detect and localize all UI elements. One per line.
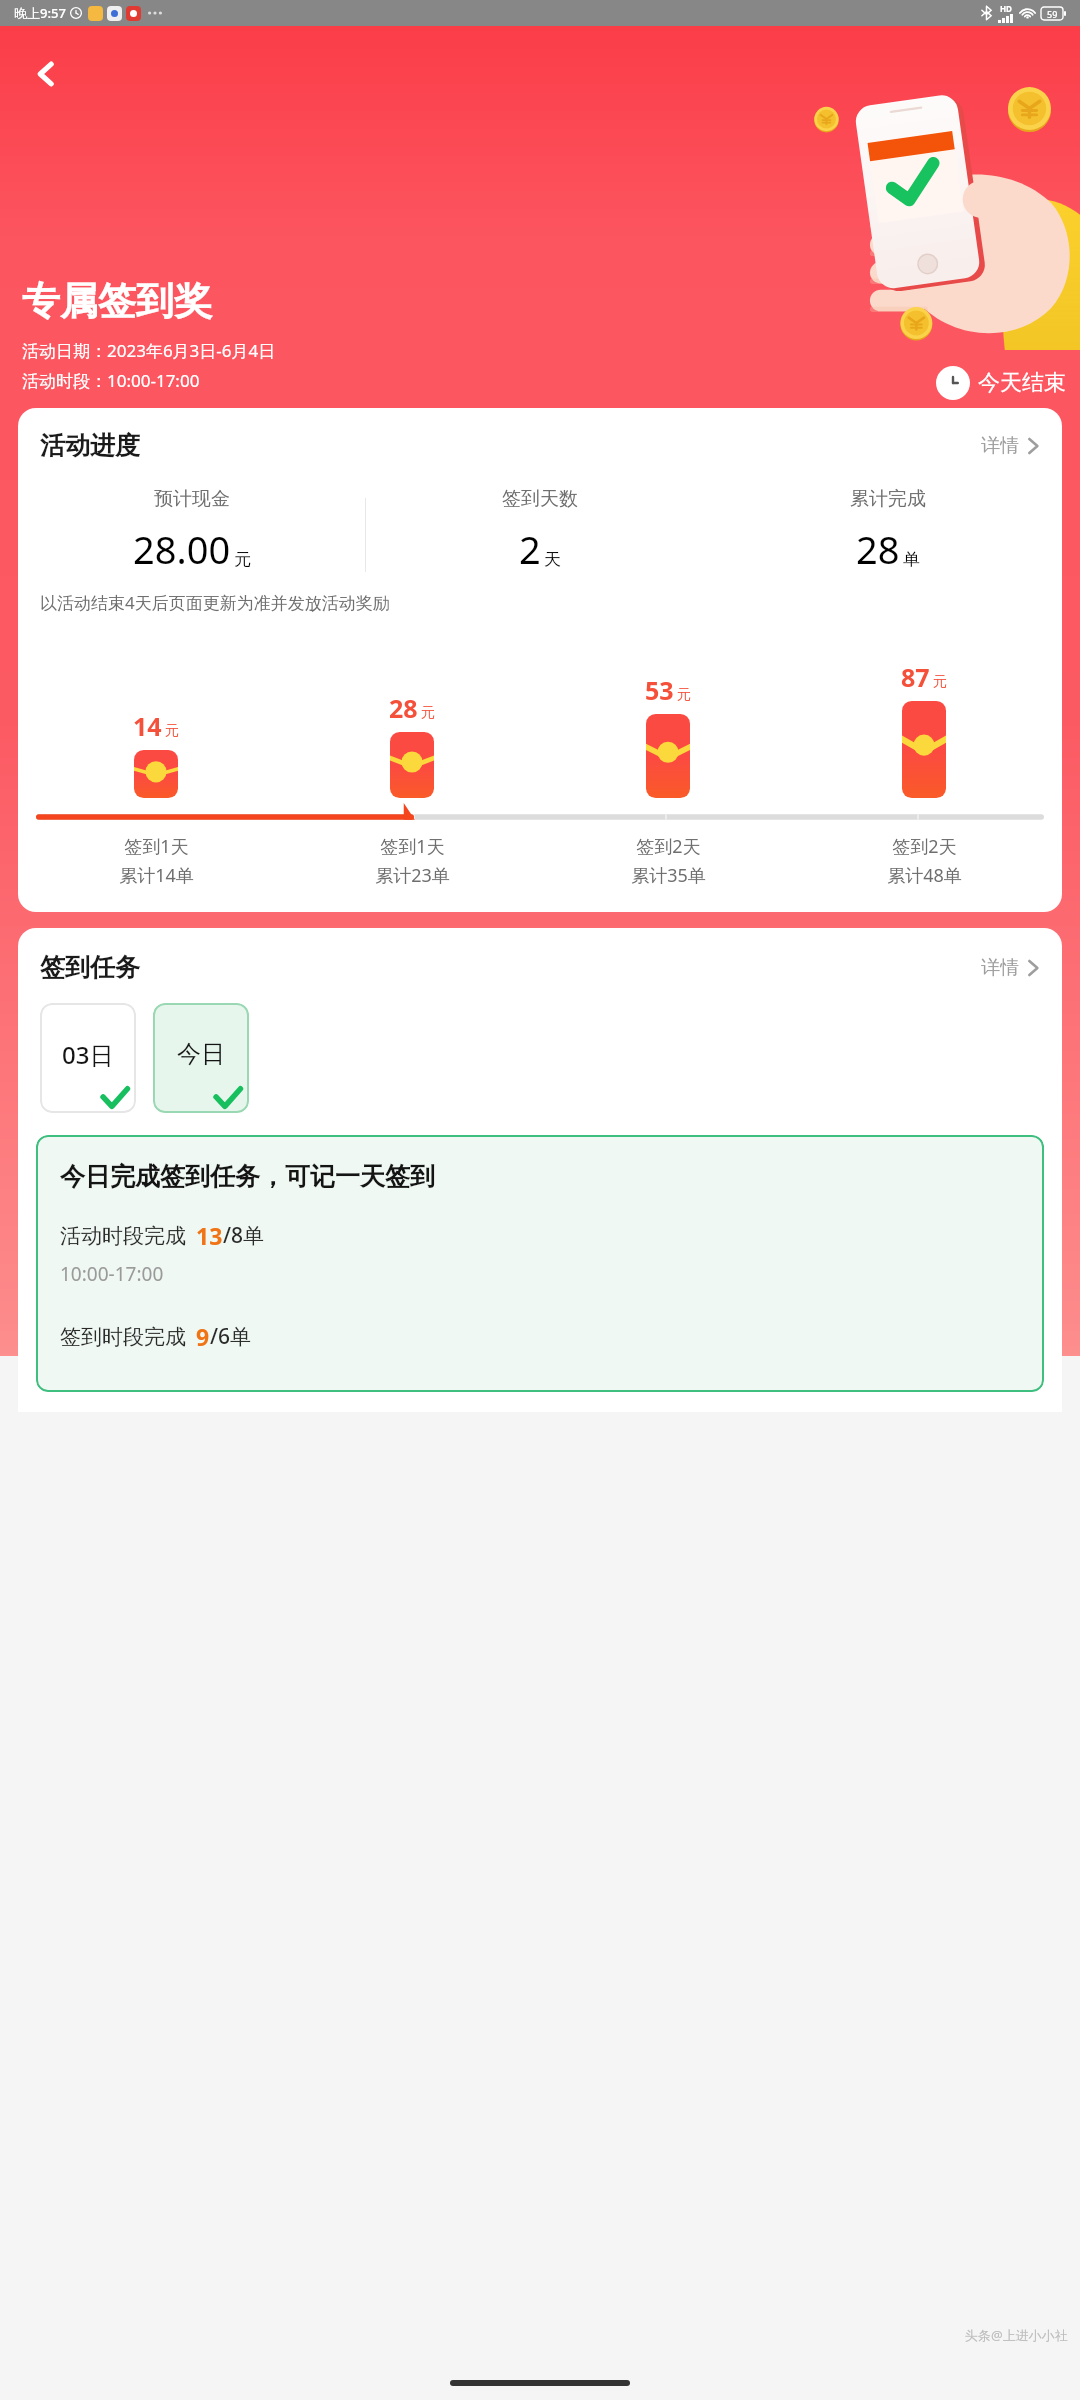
staticText: 专属签到奖	[22, 277, 212, 325]
staticText: 预计现金	[154, 487, 230, 511]
staticText: 03日	[62, 1038, 114, 1071]
staticText: 9	[196, 1321, 210, 1352]
staticText: 单	[903, 549, 920, 570]
staticText: 今日	[177, 1039, 225, 1069]
staticText: 累计14单	[119, 863, 194, 888]
staticText: 14	[133, 709, 162, 743]
staticText: HD	[1000, 3, 1012, 14]
staticText: 13	[196, 1220, 223, 1251]
staticText: 元	[234, 549, 251, 570]
staticText: 累计48单	[887, 863, 962, 888]
staticText: 53	[645, 673, 674, 707]
button[interactable]: Back	[22, 50, 70, 98]
button[interactable]: 03日	[40, 1003, 136, 1113]
staticText: 28	[856, 523, 900, 575]
staticText: 签到1天	[124, 834, 189, 859]
staticText: 87	[901, 660, 930, 694]
staticText: 28	[389, 691, 418, 725]
staticText: 累计完成	[850, 487, 926, 511]
button[interactable]: 详情	[981, 434, 1040, 458]
staticText: 累计23单	[375, 863, 450, 888]
staticText: 天	[544, 549, 561, 570]
staticText: 元	[421, 704, 435, 722]
button[interactable]: 详情	[981, 956, 1040, 980]
staticText: 头条@上进小小社	[965, 2326, 1068, 2344]
staticText: 活动时段完成	[60, 1223, 186, 1249]
staticText: 今天结束	[978, 369, 1066, 397]
staticText: 签到2天	[636, 834, 701, 859]
staticText: 签到时段完成	[60, 1324, 186, 1350]
staticText: 签到任务	[40, 952, 140, 983]
staticText: 元	[165, 722, 179, 740]
staticText: 活动日期：2023年6月3日-6月4日	[22, 339, 276, 362]
staticText: 10:00-17:00	[60, 1261, 164, 1287]
staticText: 元	[677, 686, 691, 704]
staticText: 今日完成签到任务，可记一天签到	[60, 1161, 435, 1192]
staticText: 签到天数	[502, 487, 578, 511]
staticText: 签到2天	[892, 834, 957, 859]
staticText: 活动时段：10:00-17:00	[22, 369, 200, 392]
button[interactable]: 今日	[153, 1003, 249, 1113]
staticText: 以活动结束4天后页面更新为准并发放活动奖励	[40, 591, 390, 614]
staticText: 签到1天	[380, 834, 445, 859]
staticText: 59	[1047, 8, 1058, 20]
staticText: 晚上9:57	[14, 4, 66, 22]
staticText: 28.00	[133, 523, 231, 575]
staticText: 2	[519, 523, 541, 575]
staticText: 累计35单	[631, 863, 706, 888]
staticText: /6单	[210, 1322, 252, 1351]
staticText: 元	[933, 673, 947, 691]
staticText: 活动进度	[40, 430, 140, 461]
staticText: 详情	[981, 434, 1019, 458]
staticText: 详情	[981, 956, 1019, 980]
staticText: /8单	[223, 1221, 265, 1250]
